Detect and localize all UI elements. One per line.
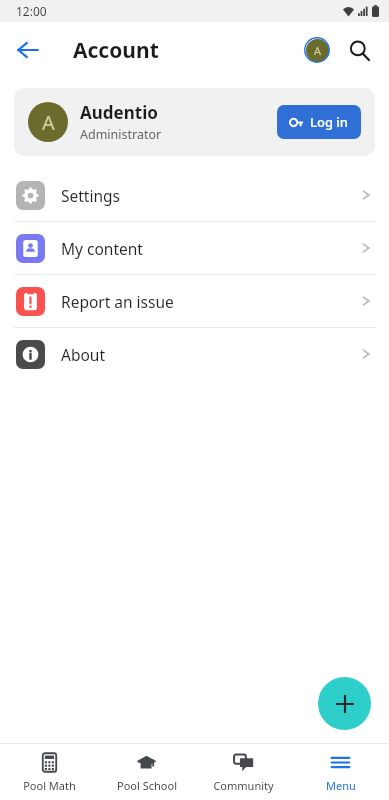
- button[interactable]: Community: [195, 744, 292, 800]
- button[interactable]: Add: [318, 677, 371, 730]
- button[interactable]: About: [0, 328, 389, 380]
- button[interactable]: A: [14, 88, 375, 156]
- staticText: Administrator: [80, 126, 162, 143]
- staticText: 12:00: [16, 3, 47, 19]
- staticText: A: [42, 109, 55, 136]
- button[interactable]: Back: [6, 28, 50, 72]
- button[interactable]: Log in: [277, 105, 361, 139]
- staticText: Report an issue: [61, 291, 359, 312]
- staticText: Account: [73, 36, 159, 65]
- button[interactable]: Profile: [298, 31, 336, 69]
- staticText: A: [314, 43, 322, 58]
- staticText: Menu: [326, 778, 356, 793]
- staticText: Pool Math: [23, 778, 76, 793]
- staticText: Community: [213, 778, 274, 793]
- staticText: Settings: [61, 185, 359, 206]
- button[interactable]: Menu: [292, 744, 389, 800]
- button[interactable]: Report an issue: [0, 275, 389, 327]
- button[interactable]: Pool School: [98, 744, 195, 800]
- staticText: Pool School: [117, 778, 177, 793]
- staticText: My content: [61, 238, 359, 259]
- button[interactable]: Search: [339, 30, 379, 70]
- button[interactable]: My content: [0, 222, 389, 274]
- staticText: Audentio: [80, 101, 158, 124]
- staticText: Log in: [310, 113, 348, 131]
- staticText: About: [61, 344, 359, 365]
- button[interactable]: Settings: [0, 169, 389, 221]
- button[interactable]: Pool Math: [0, 744, 98, 800]
